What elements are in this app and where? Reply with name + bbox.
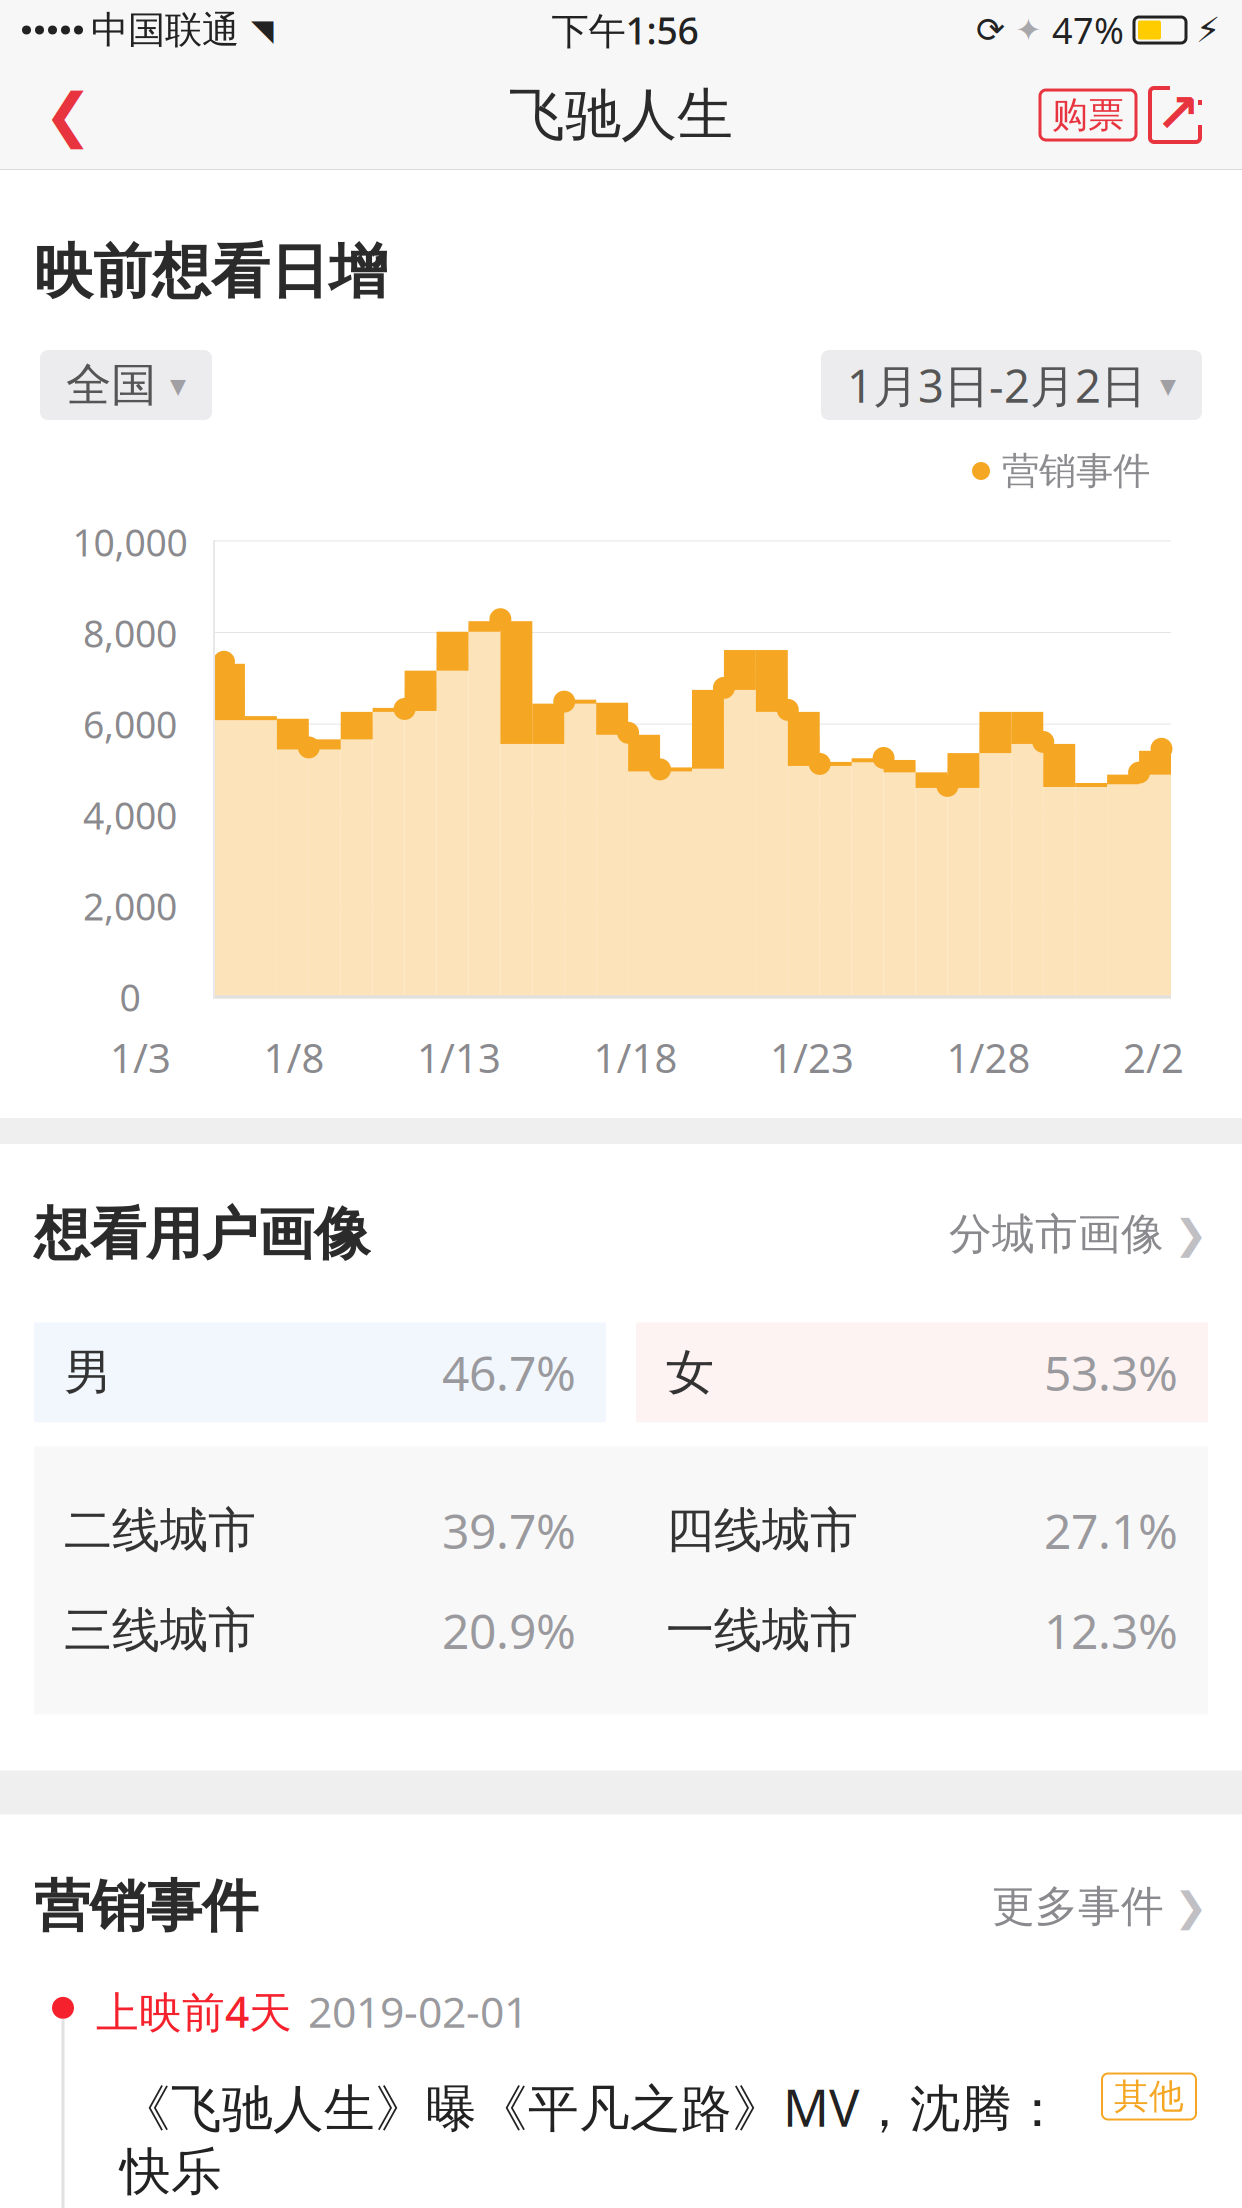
staticText: 上映前4天 — [96, 1983, 292, 2039]
button[interactable]: 更多事件 — [992, 1870, 1208, 1943]
button[interactable]: 《飞驰人生》曝《平凡之路》MV，沈腾：快乐 — [74, 2039, 1196, 2208]
button[interactable]: 全国 — [40, 350, 212, 420]
staticText: ▾ — [1160, 367, 1176, 403]
staticText: 下午1:56 — [551, 5, 698, 55]
button[interactable]: 购票 — [1040, 90, 1136, 140]
staticText: 男 — [64, 1343, 112, 1402]
staticText: 全国 — [66, 357, 156, 413]
staticText: 1/13 — [417, 1031, 501, 1084]
button[interactable]: 分享 — [1136, 60, 1214, 170]
staticText: 53.3% — [1044, 1341, 1178, 1404]
staticText: ❯ — [1174, 1884, 1208, 1929]
staticText: ▾ — [170, 367, 186, 403]
staticText: 12.3% — [1044, 1599, 1178, 1662]
staticText: ✦ — [1015, 12, 1042, 48]
staticText: 4,000 — [83, 790, 177, 840]
staticText: 其他 — [1114, 2075, 1184, 2118]
staticText: 想看用户画像 — [34, 1200, 370, 1269]
staticText: 1/3 — [110, 1031, 171, 1084]
staticText: ↗ — [1155, 83, 1200, 143]
staticText: 三线城市 — [64, 1601, 256, 1660]
staticText: 1月3日-2月2日 — [847, 355, 1146, 415]
staticText: 10,000 — [72, 517, 187, 567]
staticText: 二线城市 — [64, 1501, 256, 1560]
staticText: 四线城市 — [666, 1501, 858, 1560]
staticText: ⟳ — [976, 10, 1005, 50]
staticText: 8,000 — [83, 608, 177, 658]
staticText: 营销事件 — [34, 1872, 258, 1941]
button[interactable]: 女 — [636, 1322, 1208, 1422]
staticText: 47% — [1052, 6, 1124, 54]
staticText: ⚡︎ — [1196, 10, 1220, 50]
staticText: 一线城市 — [666, 1601, 858, 1660]
staticText: 营销事件 — [1002, 448, 1150, 494]
staticText: 映前想看日增 — [34, 236, 388, 308]
button[interactable]: 返回 — [20, 60, 116, 170]
staticText: ❮ — [43, 82, 92, 148]
staticText: 分城市画像 — [949, 1208, 1164, 1260]
staticText: 39.7% — [442, 1499, 576, 1562]
staticText: 飞驰人生 — [509, 81, 733, 149]
staticText: 1/28 — [946, 1031, 1030, 1084]
button[interactable]: 男 — [34, 1322, 606, 1422]
staticText: 《飞驰人生》曝《平凡之路》MV，沈腾：快乐 — [120, 2073, 1063, 2203]
staticText: 20.9% — [442, 1599, 576, 1662]
staticText: 46.7% — [442, 1341, 576, 1404]
button[interactable]: 1月3日-2月2日 — [821, 350, 1202, 420]
staticText: 1/23 — [770, 1031, 854, 1084]
staticText: 1/8 — [263, 1031, 324, 1084]
staticText: 0 — [119, 972, 140, 1022]
staticText: ❯ — [1174, 1211, 1208, 1257]
staticText: 女 — [666, 1343, 714, 1402]
staticText: 购票 — [1052, 93, 1124, 137]
staticText: 6,000 — [83, 699, 177, 749]
staticText: 更多事件 — [992, 1880, 1164, 1933]
staticText: 2/2 — [1123, 1031, 1184, 1084]
staticText: 27.1% — [1044, 1499, 1178, 1562]
staticText: 1/18 — [593, 1031, 677, 1084]
staticText: 2,000 — [83, 881, 177, 931]
staticText: 中国联通 — [91, 7, 239, 53]
button[interactable]: 分城市画像 — [949, 1198, 1208, 1270]
staticText: 2019-02-01 — [308, 1983, 528, 2039]
staticText: ◥ — [251, 13, 274, 47]
